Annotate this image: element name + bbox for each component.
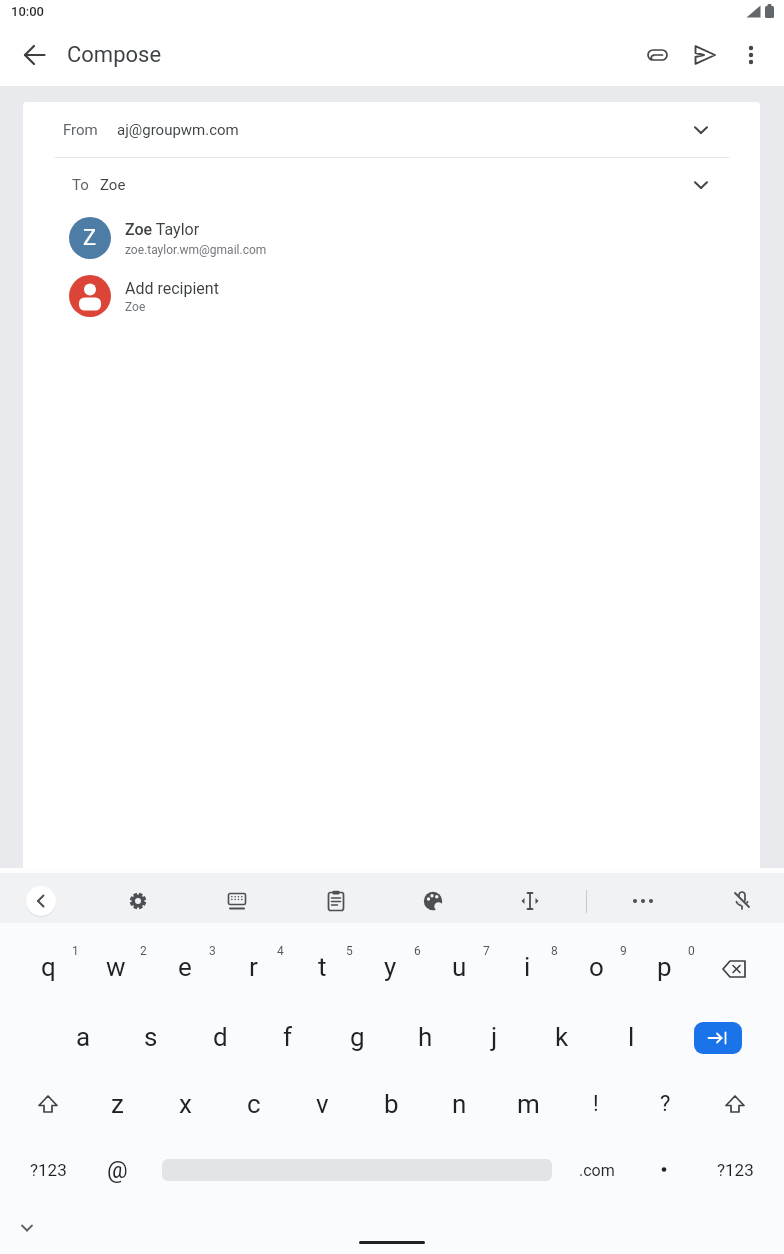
- button[interactable]: [413, 881, 453, 921]
- staticText: To: [72, 176, 89, 194]
- staticText: q: [41, 952, 56, 982]
- staticText: 5: [346, 944, 353, 958]
- button[interactable]: b: [358, 1072, 424, 1136]
- button[interactable]: [118, 881, 158, 921]
- button[interactable]: [23, 268, 760, 326]
- button[interactable]: [683, 33, 727, 77]
- button[interactable]: [694, 1022, 742, 1054]
- button[interactable]: j: [461, 1005, 527, 1069]
- staticText: ?123: [717, 1160, 754, 1180]
- button[interactable]: [23, 212, 760, 268]
- button[interactable]: c: [221, 1072, 287, 1136]
- button[interactable]: h: [392, 1005, 458, 1069]
- staticText: d: [213, 1022, 228, 1052]
- button[interactable]: s: [118, 1005, 184, 1069]
- staticText: m: [517, 1089, 540, 1119]
- button[interactable]: g: [324, 1005, 390, 1069]
- staticText: h: [418, 1022, 433, 1052]
- button[interactable]: p: [631, 935, 697, 999]
- button[interactable]: !: [563, 1072, 629, 1136]
- button[interactable]: t: [289, 935, 355, 999]
- button[interactable]: m: [495, 1072, 561, 1136]
- staticText: u: [452, 952, 467, 982]
- button[interactable]: o: [563, 935, 629, 999]
- staticText: o: [589, 952, 604, 982]
- button[interactable]: [316, 881, 356, 921]
- staticText: ?123: [30, 1160, 67, 1180]
- staticText: 8: [551, 944, 558, 958]
- staticText: r: [249, 952, 258, 982]
- staticText: 6: [414, 944, 421, 958]
- button[interactable]: u: [426, 935, 492, 999]
- button[interactable]: k: [529, 1005, 595, 1069]
- button[interactable]: d: [187, 1005, 253, 1069]
- staticText: 7: [483, 944, 490, 958]
- button[interactable]: z: [84, 1072, 150, 1136]
- staticText: !: [593, 1091, 599, 1117]
- staticText: x: [179, 1089, 192, 1119]
- button[interactable]: [23, 102, 760, 158]
- button[interactable]: [722, 881, 762, 921]
- button[interactable]: [217, 881, 257, 921]
- staticText: Zoe: [125, 300, 146, 314]
- staticText: k: [555, 1022, 569, 1052]
- button[interactable]: [7, 1208, 47, 1248]
- button[interactable]: l: [598, 1005, 664, 1069]
- staticText: @: [107, 1157, 128, 1184]
- staticText: p: [657, 952, 672, 982]
- button[interactable]: [636, 33, 680, 77]
- button[interactable]: [13, 33, 57, 77]
- staticText: e: [178, 952, 192, 982]
- button[interactable]: e: [152, 935, 218, 999]
- button[interactable]: ?: [632, 1072, 698, 1136]
- staticText: 9: [620, 944, 627, 958]
- button[interactable]: n: [426, 1072, 492, 1136]
- staticText: Add recipient: [125, 279, 219, 298]
- staticText: 1: [72, 944, 79, 958]
- button[interactable]: [26, 886, 56, 916]
- staticText: 4: [277, 944, 284, 958]
- button[interactable]: f: [255, 1005, 321, 1069]
- staticText: zoe.taylor.wm@gmail.com: [125, 243, 267, 257]
- button[interactable]: y: [357, 935, 423, 999]
- button[interactable]: w: [83, 935, 149, 999]
- staticText: Zoe Taylor: [125, 220, 200, 239]
- button[interactable]: ?123: [702, 1138, 768, 1202]
- staticText: Zoe: [100, 176, 126, 194]
- button[interactable]: ?123: [15, 1138, 81, 1202]
- staticText: ?: [660, 1091, 671, 1117]
- staticText: t: [318, 952, 327, 982]
- button[interactable]: [15, 1072, 81, 1136]
- button[interactable]: r: [220, 935, 286, 999]
- button[interactable]: a: [50, 1005, 116, 1069]
- staticText: l: [628, 1022, 635, 1052]
- button[interactable]: [702, 1072, 768, 1136]
- staticText: f: [283, 1022, 293, 1052]
- button[interactable]: [623, 881, 663, 921]
- staticText: g: [350, 1022, 365, 1052]
- button[interactable]: .com: [564, 1138, 630, 1202]
- staticText: Z: [83, 225, 97, 251]
- staticText: aj@groupwm.com: [117, 121, 239, 139]
- button[interactable]: [701, 937, 767, 1001]
- button[interactable]: q: [15, 935, 81, 999]
- staticText: .com: [579, 1161, 615, 1180]
- button[interactable]: [729, 33, 773, 77]
- staticText: 2: [140, 944, 147, 958]
- staticText: From: [63, 121, 98, 139]
- staticText: a: [76, 1022, 91, 1052]
- button[interactable]: v: [289, 1072, 355, 1136]
- staticText: j: [491, 1022, 498, 1052]
- button[interactable]: @: [84, 1138, 150, 1202]
- button[interactable]: [23, 158, 760, 212]
- staticText: Compose: [67, 42, 162, 68]
- staticText: i: [524, 952, 531, 982]
- staticText: 0: [688, 944, 695, 958]
- staticText: 3: [209, 944, 216, 958]
- button[interactable]: [510, 881, 550, 921]
- button[interactable]: i: [494, 935, 560, 999]
- staticText: y: [384, 952, 397, 982]
- staticText: c: [247, 1089, 261, 1119]
- button[interactable]: x: [152, 1072, 218, 1136]
